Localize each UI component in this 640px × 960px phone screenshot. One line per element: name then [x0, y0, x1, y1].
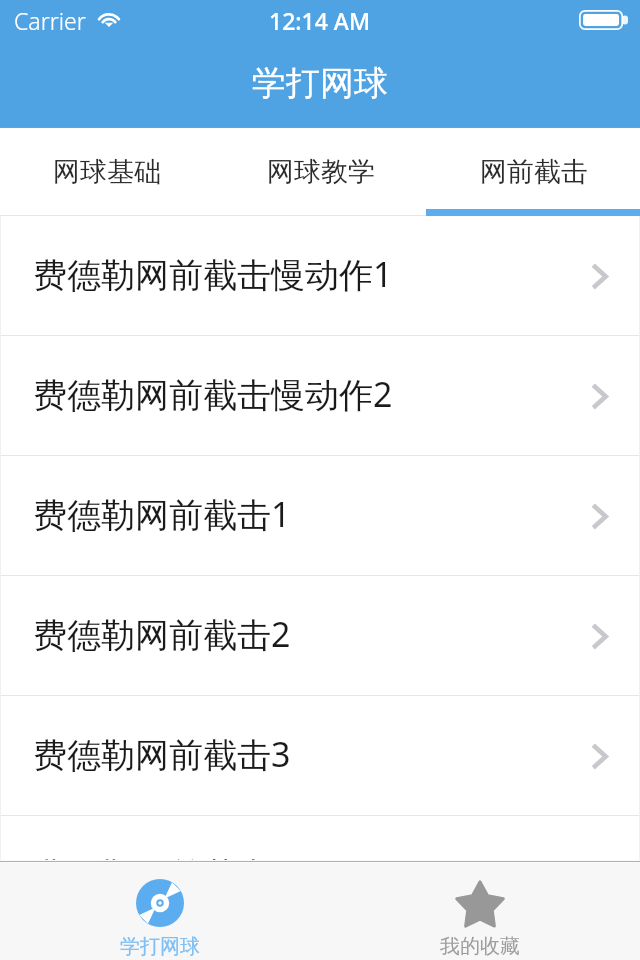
staticText: 费德勒网前截击3: [33, 731, 291, 777]
staticText: 费德勒网前截击2: [33, 611, 291, 657]
button[interactable]: 学打网球: [0, 863, 320, 960]
button[interactable]: 费德勒网前截击3: [0, 696, 640, 815]
other: Wi-Fi: [96, 9, 122, 27]
staticText: 网前截击: [480, 155, 588, 189]
staticText: 费德勒网前截击慢动作2: [33, 371, 393, 417]
staticText: 费德勒网前截击4: [33, 851, 291, 860]
staticText: 12:14 AM: [269, 5, 371, 36]
staticText: Carrier: [14, 5, 86, 36]
staticText: 费德勒网前截击1: [33, 491, 291, 537]
staticText: 网球教学: [267, 155, 375, 189]
staticText: 网球基础: [53, 155, 161, 189]
button[interactable]: 费德勒网前截击慢动作1: [0, 216, 640, 335]
button[interactable]: 费德勒网前截击慢动作2: [0, 336, 640, 455]
button[interactable]: 网球教学: [214, 128, 427, 216]
button[interactable]: 网前截击: [427, 128, 640, 216]
staticText: 费德勒网前截击慢动作1: [33, 251, 393, 297]
other: 我的收藏: [454, 879, 506, 931]
button[interactable]: 费德勒网前截击1: [0, 456, 640, 575]
button[interactable]: 我的收藏: [320, 863, 640, 960]
staticText: 学打网球: [120, 934, 200, 959]
staticText: 学打网球: [252, 62, 388, 105]
button[interactable]: 费德勒网前截击4: [0, 816, 640, 860]
other: 学打网球: [136, 879, 184, 927]
staticText: 我的收藏: [440, 934, 520, 959]
button[interactable]: 网球基础: [0, 128, 214, 216]
button[interactable]: 费德勒网前截击2: [0, 576, 640, 695]
